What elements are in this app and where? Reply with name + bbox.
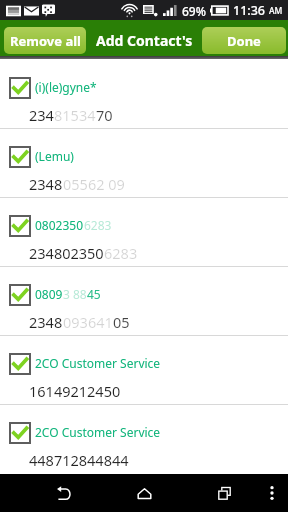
staticText: 448712844844 — [29, 450, 129, 470]
staticText: 2CO Customer Service — [35, 355, 161, 371]
button[interactable]: Recent apps — [184, 474, 264, 512]
staticText: Remove all — [10, 32, 81, 50]
staticText: (Lemu) — [35, 148, 74, 164]
staticText: 45 — [87, 286, 101, 302]
staticText: 16149212450 — [29, 381, 121, 401]
staticText: AM — [269, 5, 283, 17]
staticText: 0802350 — [35, 217, 84, 233]
button[interactable]: (Lemu) — [0, 129, 288, 197]
staticText: 70 — [96, 105, 113, 125]
staticText: 2CO Customer Service — [35, 424, 161, 440]
button[interactable]: More options — [264, 474, 288, 512]
staticText: 2348 — [29, 174, 63, 194]
staticText: 05 — [113, 312, 130, 332]
button[interactable]: Back — [24, 474, 104, 512]
button[interactable]: 0802350 — [0, 198, 288, 266]
button[interactable]: 2CO Customer Service — [0, 336, 288, 404]
staticText: Done — [227, 32, 261, 50]
staticText: 234802350 — [29, 243, 104, 263]
staticText: 6283 — [104, 243, 138, 263]
button[interactable]: (i)(le)gyne* — [0, 60, 288, 128]
staticText: 05562 09 — [63, 174, 125, 194]
staticText: 093641 — [63, 312, 113, 332]
staticText: 81534 — [54, 105, 96, 125]
staticText: 2348 — [29, 312, 63, 332]
staticText: 69% — [182, 3, 206, 19]
staticText: Add Contact's — [96, 31, 193, 50]
staticText: (i)(le)gyne* — [35, 79, 97, 95]
staticText: 0809 — [35, 286, 63, 302]
button[interactable]: Done — [202, 27, 286, 54]
button[interactable]: 0809 — [0, 267, 288, 335]
staticText: 11:36 — [233, 2, 266, 19]
button[interactable]: Home — [104, 474, 184, 512]
staticText: 3 88 — [63, 286, 87, 302]
button[interactable]: Remove all — [4, 27, 86, 54]
button[interactable]: 2CO Customer Service — [0, 405, 288, 473]
staticText: 234 — [29, 105, 54, 125]
staticText: 6283 — [84, 217, 112, 233]
